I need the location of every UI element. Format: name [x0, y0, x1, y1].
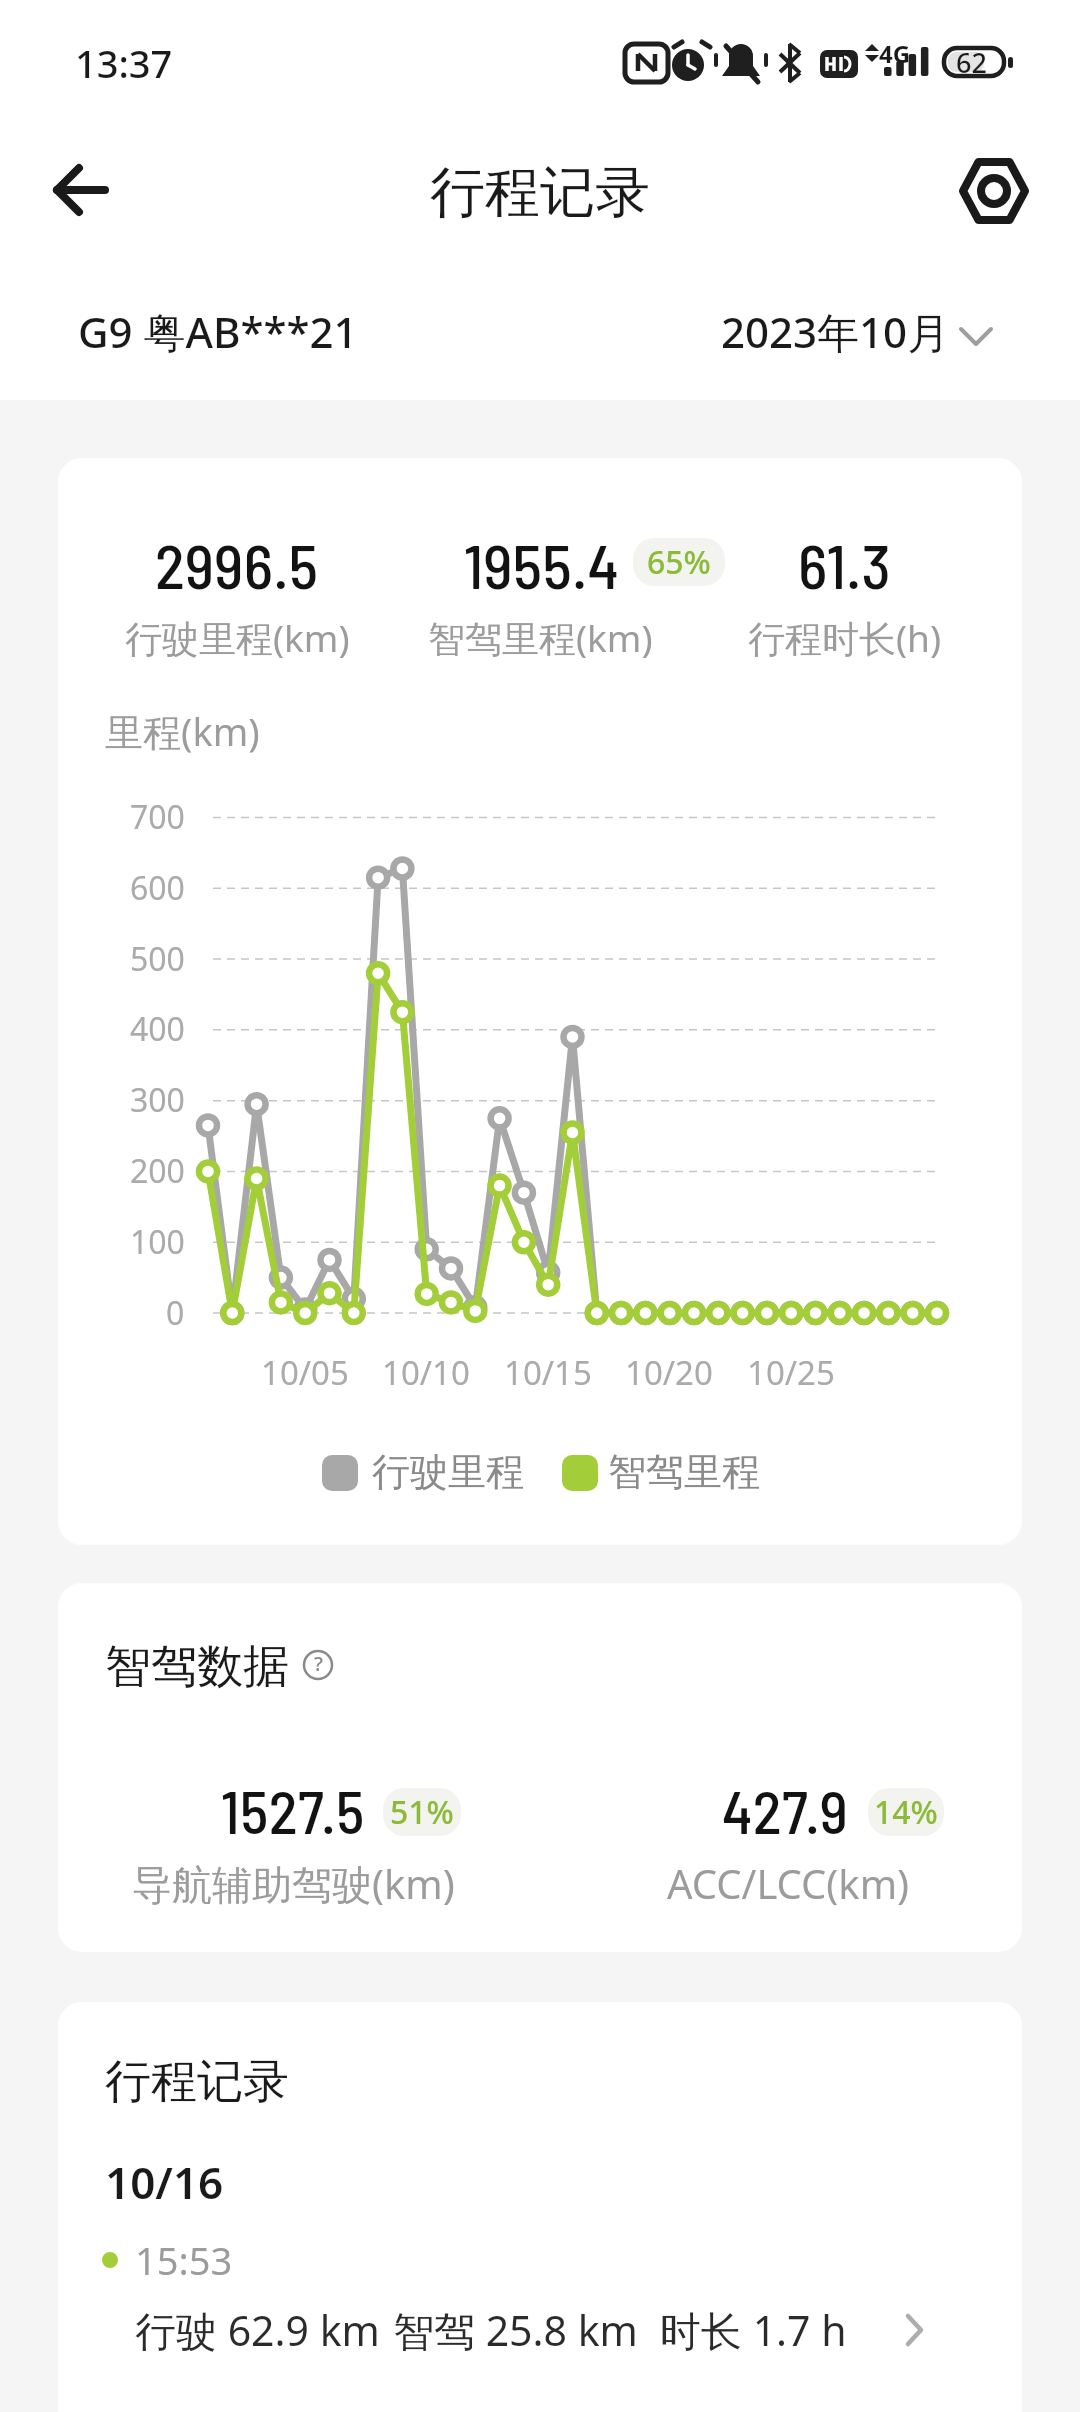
staticText: 700 — [130, 795, 185, 839]
staticText: 行驶里程 — [372, 1448, 524, 1496]
staticText: 51% — [390, 1790, 454, 1834]
staticText: 1527.5 — [221, 1774, 365, 1846]
staticText: 导航辅助驾驶(km) — [132, 1856, 455, 1911]
staticText: 智驾数据 — [105, 1638, 289, 1696]
staticText: 0 — [166, 1291, 185, 1335]
staticText: 时长 1.7 h — [660, 2302, 847, 2358]
staticText: 14% — [874, 1790, 938, 1834]
staticText: 10/15 — [504, 1350, 592, 1395]
staticText: 智驾里程(km) — [428, 612, 653, 663]
staticText: 行程记录 — [105, 2053, 289, 2111]
staticText: 里程(km) — [105, 705, 260, 757]
staticText: 10/25 — [747, 1350, 835, 1395]
staticText: 行驶里程(km) — [125, 612, 350, 663]
staticText: 600 — [130, 866, 185, 910]
staticText: 100 — [130, 1220, 185, 1264]
staticText: 4G — [879, 37, 911, 70]
staticText: ACC/LCC(km) — [667, 1856, 910, 1910]
staticText: 1955.4 — [464, 527, 620, 601]
staticText: G9 粤AB***21 — [78, 303, 358, 360]
staticText: 62 — [956, 44, 987, 81]
staticText: 200 — [130, 1149, 185, 1193]
staticText: 10/10 — [382, 1350, 470, 1395]
button[interactable] — [45, 155, 117, 227]
staticText: 13:37 — [75, 37, 173, 89]
staticText: 65% — [647, 540, 711, 584]
staticText: 行驶 62.9 km — [135, 2302, 380, 2358]
staticText: 智驾里程 — [608, 1448, 760, 1496]
staticText: 2023年10月 — [721, 303, 950, 360]
staticText: ? — [314, 1650, 323, 1677]
staticText: 10/20 — [625, 1350, 713, 1395]
button[interactable] — [955, 153, 1033, 229]
staticText: 61.3 — [798, 527, 892, 601]
staticText: 行程时长(h) — [748, 612, 942, 663]
button[interactable] — [105, 2298, 975, 2364]
staticText: 智驾 25.8 km — [393, 2302, 638, 2358]
staticText: 10/05 — [261, 1350, 349, 1395]
staticText: 行程记录 — [430, 158, 650, 227]
button[interactable] — [700, 296, 1002, 366]
staticText: 500 — [130, 937, 185, 981]
staticText: 2996.5 — [155, 527, 319, 601]
staticText: 15:53 — [135, 2234, 233, 2286]
staticText: 300 — [130, 1078, 185, 1122]
staticText: 400 — [130, 1007, 185, 1051]
staticText: 10/16 — [105, 2152, 224, 2212]
staticText: 427.9 — [722, 1774, 849, 1846]
